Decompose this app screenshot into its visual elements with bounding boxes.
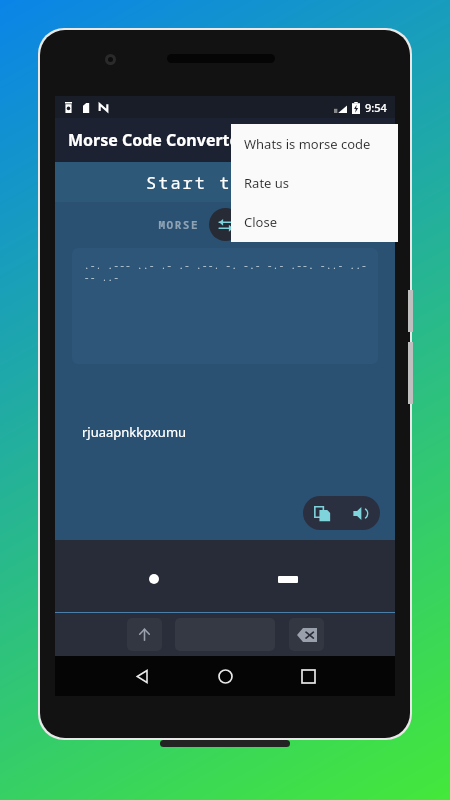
staticText: .-. .--- ..- .- .- .--. -. -.- -.- .--. … bbox=[84, 259, 378, 283]
button[interactable]: Play sound bbox=[341, 496, 380, 530]
button[interactable]: Close bbox=[231, 202, 398, 241]
button[interactable]: Copy bbox=[303, 496, 341, 530]
button[interactable]: Back bbox=[117, 656, 167, 696]
button[interactable]: TEXT bbox=[252, 217, 322, 232]
button[interactable]: Home bbox=[200, 656, 250, 696]
staticText: Morse Code Converter bbox=[68, 129, 247, 151]
button[interactable]: Swap morse and text bbox=[209, 208, 242, 241]
staticText: Close bbox=[244, 213, 277, 231]
button[interactable]: Rate us bbox=[231, 163, 398, 202]
button[interactable]: Dot bbox=[141, 566, 167, 592]
button[interactable]: MORSE bbox=[129, 217, 199, 232]
button[interactable]: Shift bbox=[127, 618, 162, 651]
button[interactable]: Whats is morse code bbox=[231, 124, 398, 163]
button[interactable]: Start to code bbox=[55, 162, 395, 202]
button[interactable]: .-. .--- ..- .- .- .--. -. -.- -.- .--. … bbox=[72, 248, 378, 364]
staticText: Rate us bbox=[244, 174, 290, 192]
staticText: Start to code bbox=[146, 171, 305, 194]
staticText: 9:54 bbox=[365, 100, 387, 115]
staticText: Whats is morse code bbox=[244, 135, 371, 153]
button[interactable]: Recent apps bbox=[283, 656, 333, 696]
button[interactable]: Backspace bbox=[289, 618, 324, 651]
button[interactable]: Dash bbox=[271, 566, 305, 592]
staticText: rjuaapnkkpxumu bbox=[82, 423, 187, 441]
